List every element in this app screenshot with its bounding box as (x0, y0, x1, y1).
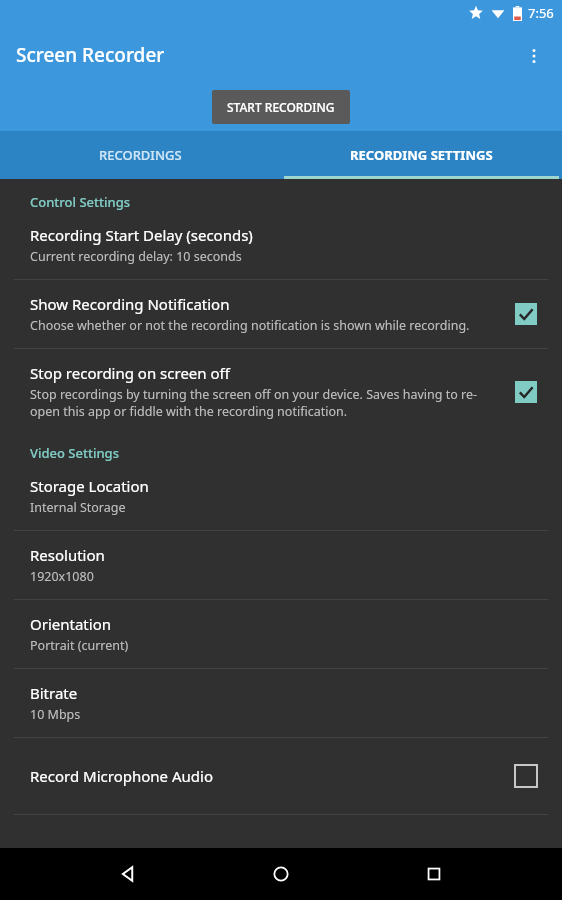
staticText: Record Microphone Audio (30, 766, 213, 786)
button[interactable]: Record Microphone Audio (506, 756, 546, 796)
staticText: Resolution (30, 545, 105, 565)
staticText: 7:56 (528, 4, 554, 22)
staticText: START RECORDING (227, 99, 335, 115)
staticText: Video Settings (30, 444, 119, 462)
staticText: Stop recording on screen off (30, 363, 230, 383)
staticText: Orientation (30, 614, 111, 634)
button[interactable]: RECORDING SETTINGS (281, 131, 562, 179)
staticText: RECORDING SETTINGS (350, 146, 493, 164)
button[interactable]: Record Microphone Audio (0, 738, 562, 814)
staticText: Show Recording Notification (30, 294, 230, 314)
button[interactable]: RECORDINGS (0, 131, 281, 179)
staticText: Recording Start Delay (seconds) (30, 225, 253, 245)
staticText: Portrait (current) (30, 637, 129, 654)
staticText: Internal Storage (30, 499, 126, 516)
button[interactable]: Stop recording on screen off (0, 349, 562, 432)
button[interactable]: START RECORDING (212, 90, 350, 124)
button[interactable]: Recording Start Delay (seconds) (0, 225, 562, 279)
button[interactable]: Back (105, 850, 153, 898)
button[interactable]: Bitrate (0, 669, 562, 737)
staticText: Choose whether or not the recording noti… (30, 317, 470, 334)
button[interactable]: Resolution (0, 531, 562, 599)
button[interactable]: More options (514, 36, 554, 76)
button[interactable]: Stop recording on screen off (506, 372, 546, 412)
staticText: Current recording delay: 10 seconds (30, 248, 242, 265)
button[interactable]: Orientation (0, 600, 562, 668)
button[interactable]: Show Recording Notification (0, 280, 562, 348)
staticText: 10 Mbps (30, 706, 81, 723)
staticText: Storage Location (30, 476, 149, 496)
button[interactable]: Storage Location (0, 476, 562, 530)
button[interactable]: Recent apps (410, 850, 458, 898)
button[interactable]: Show Recording Notification (506, 294, 546, 334)
button[interactable]: Home (257, 850, 305, 898)
staticText: Stop recordings by turning the screen of… (30, 386, 494, 420)
staticText: Screen Recorder (16, 42, 165, 68)
staticText: RECORDINGS (99, 146, 182, 164)
staticText: Bitrate (30, 683, 78, 703)
staticText: Control Settings (30, 193, 131, 211)
staticText: 1920x1080 (30, 568, 94, 585)
